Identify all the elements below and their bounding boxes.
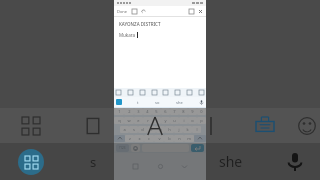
button[interactable]: 1: [114, 108, 124, 115]
button[interactable]: Home: [158, 164, 163, 169]
button[interactable]: d: [138, 126, 147, 133]
button[interactable]: e: [134, 117, 143, 124]
button[interactable]: u: [170, 117, 179, 124]
staticText: m: [187, 136, 191, 141]
button[interactable]: Keyboard tool 4: [163, 90, 168, 95]
button[interactable]: n: [174, 135, 184, 142]
button[interactable]: Backspace: [194, 135, 206, 142]
button[interactable]: l: [192, 126, 201, 133]
button[interactable]: b: [164, 135, 174, 142]
staticText: k: [186, 127, 189, 132]
button[interactable]: h: [165, 126, 174, 133]
button[interactable]: Keyboard tool 1: [128, 90, 133, 95]
button[interactable]: Bookmark: [186, 108, 236, 143]
button[interactable]: she: [176, 100, 183, 105]
button[interactable]: Recents: [133, 164, 138, 169]
staticText: j: [178, 127, 180, 132]
button[interactable]: f: [147, 126, 156, 133]
button[interactable]: Numbers: [116, 144, 129, 152]
button[interactable]: Undo: [141, 9, 146, 14]
button[interactable]: Emoji: [294, 108, 320, 143]
button[interactable]: Done: [117, 9, 128, 14]
button[interactable]: Voice input: [270, 143, 320, 180]
staticText: w: [127, 118, 131, 123]
staticText: KAYONZA DISTRICT: [119, 21, 161, 27]
button[interactable]: 8: [179, 108, 188, 115]
button[interactable]: 4: [143, 108, 152, 115]
staticText: Mukara: [119, 32, 136, 38]
button[interactable]: Enter: [191, 144, 204, 152]
staticText: s: [90, 153, 97, 171]
staticText: v: [158, 136, 161, 141]
button[interactable]: m: [184, 135, 194, 142]
button[interactable]: Keyboard tool 0: [116, 90, 121, 95]
button[interactable]: Keyboard tool 2: [140, 90, 145, 95]
button[interactable]: s: [62, 143, 124, 180]
staticText: d: [141, 127, 144, 132]
staticText: 6: [164, 109, 167, 114]
button[interactable]: she: [192, 143, 270, 180]
button[interactable]: 9: [188, 108, 197, 115]
button[interactable]: q: [114, 117, 124, 124]
button[interactable]: Keyboard tool 5: [175, 90, 180, 95]
button[interactable]: z: [125, 135, 134, 142]
button[interactable]: o: [188, 117, 197, 124]
button[interactable]: Keyboard tool 7: [199, 90, 204, 95]
button[interactable]: s: [129, 126, 138, 133]
button[interactable]: Save: [189, 9, 194, 14]
button[interactable]: w: [124, 117, 134, 124]
button[interactable]: y: [161, 117, 170, 124]
staticText: ?123: [119, 146, 126, 150]
button[interactable]: r: [143, 117, 152, 124]
button[interactable]: t: [152, 117, 161, 124]
staticText: 9: [191, 109, 194, 114]
button[interactable]: j: [174, 126, 183, 133]
button[interactable]: 3: [134, 108, 143, 115]
staticText: 7: [173, 109, 176, 114]
button[interactable]: k: [183, 126, 192, 133]
button[interactable]: Back: [182, 164, 187, 169]
staticText: Done: [117, 9, 128, 14]
button[interactable]: Selected suggestion: [116, 99, 122, 105]
button[interactable]: 2: [124, 108, 134, 115]
staticText: n: [178, 136, 181, 141]
button[interactable]: p: [197, 117, 206, 124]
button[interactable]: Screenshot: [62, 108, 124, 143]
staticText: 3: [137, 109, 140, 114]
button[interactable]: Emoji: [131, 144, 140, 152]
staticText: u: [173, 118, 176, 123]
button[interactable]: so: [155, 100, 160, 105]
button[interactable]: g: [156, 126, 165, 133]
button[interactable]: Keyboard: [236, 108, 294, 143]
staticText: e: [137, 118, 140, 123]
staticText: h: [168, 127, 171, 132]
button[interactable]: Apps: [0, 108, 62, 143]
button[interactable]: Close: [198, 9, 203, 14]
button[interactable]: 6: [161, 108, 170, 115]
button[interactable]: 5: [152, 108, 161, 115]
staticText: 4: [146, 109, 149, 114]
staticText: c: [148, 136, 150, 141]
button[interactable]: Keyboard tool 6: [187, 90, 192, 95]
staticText: o: [191, 118, 194, 123]
button[interactable]: Checklist: [132, 9, 137, 14]
button[interactable]: Voice typing: [199, 100, 204, 105]
staticText: i: [183, 118, 185, 123]
button[interactable]: x: [134, 135, 144, 142]
button[interactable]: App drawer: [0, 143, 62, 180]
button[interactable]: 0: [197, 108, 206, 115]
button[interactable]: c: [144, 135, 154, 142]
staticText: she: [219, 152, 243, 171]
button[interactable]: 7: [170, 108, 179, 115]
button[interactable]: t: [137, 100, 139, 105]
button[interactable]: Text: [124, 108, 186, 143]
button[interactable]: v: [154, 135, 164, 142]
button[interactable]: Keyboard tool 3: [152, 90, 157, 95]
staticText: 1: [118, 109, 121, 114]
staticText: 0: [200, 109, 203, 114]
staticText: 5: [155, 109, 158, 114]
button[interactable]: Shift: [114, 135, 125, 142]
button[interactable]: a: [120, 126, 129, 133]
